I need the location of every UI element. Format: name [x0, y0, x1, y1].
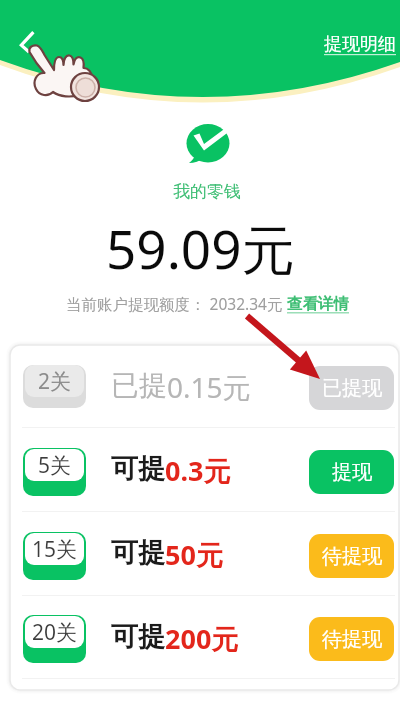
- staticText: 2关: [38, 367, 72, 396]
- staticText: 可提: [111, 536, 165, 570]
- staticText: 我的零钱: [173, 181, 241, 202]
- staticText: 已提: [111, 368, 167, 403]
- staticText: 可提: [111, 620, 165, 654]
- staticText: 查看详情: [287, 294, 349, 314]
- staticText: 提现: [332, 460, 372, 485]
- button[interactable]: 5关: [10, 428, 399, 511]
- button[interactable]: 15关: [10, 512, 399, 595]
- staticText: 待提现: [322, 544, 382, 569]
- staticText: 59.09元: [106, 212, 295, 284]
- button[interactable]: 2关: [10, 345, 399, 427]
- staticText: 50元: [165, 536, 223, 573]
- button[interactable]: 20关: [10, 596, 399, 678]
- button[interactable]: Back: [8, 24, 46, 60]
- staticText: 200元: [165, 620, 239, 657]
- button[interactable]: 查看详情: [287, 294, 349, 314]
- button[interactable]: 提现明细: [324, 33, 396, 56]
- staticText: 待提现: [322, 627, 382, 652]
- button[interactable]: 待提现: [309, 617, 394, 661]
- button[interactable]: 待提现: [309, 534, 394, 578]
- staticText: 15关: [32, 535, 78, 564]
- staticText: 0.15元: [167, 368, 251, 406]
- button[interactable]: 提现: [309, 450, 394, 494]
- staticText: 20关: [32, 618, 78, 647]
- button[interactable]: 已提现: [309, 366, 394, 410]
- staticText: 可提: [111, 452, 165, 486]
- staticText: 当前账户提现额度： 2032.34元: [66, 293, 287, 314]
- staticText: 5关: [38, 451, 72, 480]
- staticText: 提现明细: [324, 33, 396, 56]
- staticText: 0.3元: [165, 452, 231, 489]
- staticText: 已提现: [322, 376, 382, 401]
